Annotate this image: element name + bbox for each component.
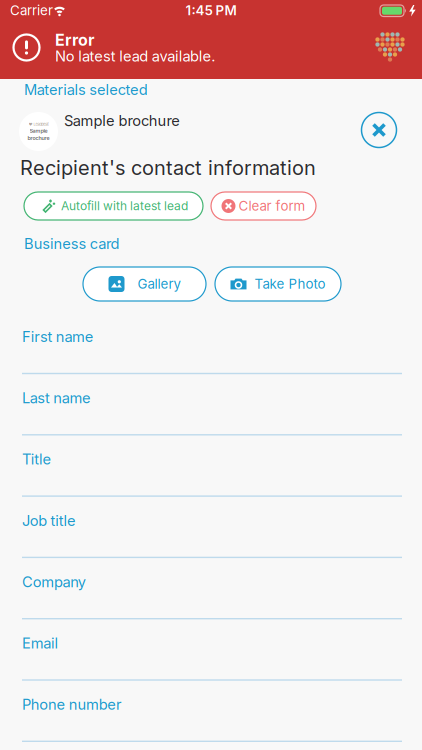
staticText: Phone number <box>22 696 122 713</box>
staticText: Materials selected <box>24 81 148 98</box>
staticText: 1:45 PM <box>185 2 236 18</box>
staticText: Carrier <box>10 2 53 18</box>
staticText: Error <box>55 30 95 49</box>
staticText: Sample brochure <box>64 112 180 129</box>
staticText: ❤ Leadbeat <box>28 122 48 126</box>
staticText: brochure <box>27 135 49 141</box>
staticText: Title <box>22 451 51 468</box>
staticText: Autofill with latest lead <box>61 199 188 213</box>
staticText: Last name <box>22 389 91 407</box>
button[interactable]: Autofill with latest lead <box>24 192 203 220</box>
staticText: Job title <box>22 512 76 529</box>
staticText: Sample <box>29 128 47 134</box>
staticText: Gallery <box>137 276 180 292</box>
staticText: Company <box>22 573 86 590</box>
staticText: Email <box>22 634 58 652</box>
staticText: No latest lead available. <box>55 47 215 65</box>
staticText: Business card <box>24 235 120 252</box>
staticText: Recipient's contact information <box>20 156 316 180</box>
staticText: Take Photo <box>254 276 325 292</box>
button[interactable]: Take Photo <box>215 267 341 301</box>
staticText: First name <box>22 328 94 345</box>
button[interactable]: Remove material <box>361 112 396 147</box>
button[interactable]: Clear form <box>211 192 316 220</box>
button[interactable]: Gallery <box>83 267 206 301</box>
staticText: Clear form <box>238 198 305 214</box>
